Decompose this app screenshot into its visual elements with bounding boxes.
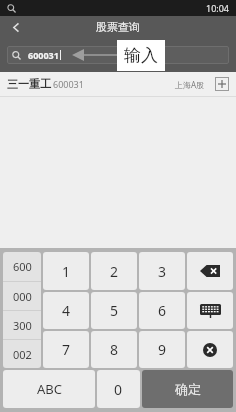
staticText: 2 [110,262,119,281]
button[interactable]: 6 [139,292,185,329]
button[interactable]: Backspace [187,252,233,290]
staticText: 0 [114,380,123,399]
staticText: 8 [110,340,119,359]
button[interactable]: 002 [3,340,41,368]
staticText: 002 [13,347,32,362]
button[interactable]: 300 [3,311,41,339]
button[interactable]: 3 [139,252,185,290]
button[interactable]: 2 [91,252,137,290]
button[interactable]: 5 [91,292,137,329]
staticText: 9 [158,340,167,359]
staticText: 3 [158,262,167,281]
staticText: 1 [62,262,71,281]
staticText: 4 [62,301,71,320]
button[interactable]: Back [0,16,32,38]
staticText: 上海A股 [175,79,205,90]
staticText: 确定 [175,381,201,397]
staticText: 600 [13,259,32,274]
button[interactable]: 0 [97,370,140,408]
staticText: 5 [110,301,119,320]
button[interactable]: 1 [43,252,89,290]
staticText: 600031 [28,49,59,61]
button[interactable]: 三一重工 [0,72,236,96]
button[interactable]: 8 [91,331,137,368]
staticText: 000 [13,289,32,304]
staticText: 输入 [124,45,158,66]
staticText: 三一重工 [7,77,51,91]
button[interactable]: Clear [187,331,233,368]
button[interactable]: 9 [139,331,185,368]
staticText: 10:04 [206,2,230,14]
staticText: 300 [13,318,32,333]
staticText: 6 [158,301,167,320]
staticText: ABC [37,380,62,398]
button[interactable]: 确定 [142,370,233,408]
button[interactable]: Switch keyboard [187,292,233,329]
button[interactable]: 000 [3,282,41,310]
button[interactable]: 7 [43,331,89,368]
button[interactable]: Add to watchlist [215,77,229,91]
button[interactable]: 600 [3,252,41,281]
staticText: 7 [62,340,71,359]
staticText: 600031 [53,78,84,90]
button[interactable]: 4 [43,292,89,329]
button[interactable]: ABC [3,370,95,408]
staticText: 股票查询 [96,20,140,34]
button[interactable]: 600031 [7,46,229,64]
